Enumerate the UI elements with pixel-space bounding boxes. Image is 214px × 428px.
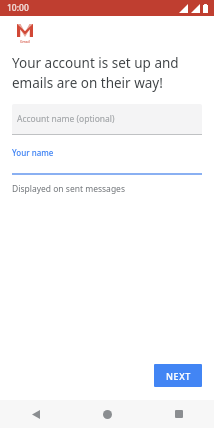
button[interactable]: NEXT (154, 364, 202, 387)
staticText: NEXT (166, 370, 191, 382)
staticText: Your account is set up and emails are on… (12, 54, 179, 92)
button[interactable]: Your name (12, 147, 202, 195)
button[interactable]: Back (0, 400, 72, 428)
staticText: Displayed on sent messages (12, 183, 125, 195)
button[interactable]: Account name (optional) (12, 104, 202, 135)
button[interactable]: Recent apps (143, 400, 214, 428)
staticText: Account name (optional) (17, 113, 115, 125)
button[interactable]: Home (72, 400, 143, 428)
staticText: 10:00 (7, 2, 29, 14)
staticText: Your name (12, 147, 54, 158)
staticText: Gmail (20, 39, 30, 44)
